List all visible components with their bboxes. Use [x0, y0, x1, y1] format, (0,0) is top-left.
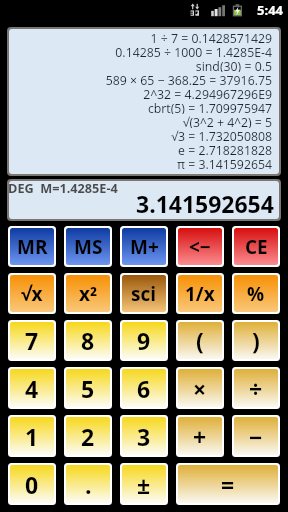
button[interactable]: ±: [122, 465, 166, 503]
staticText: ±: [137, 469, 151, 500]
button[interactable]: 7: [10, 322, 54, 359]
staticText: ÷: [249, 373, 263, 404]
staticText: 5: [81, 373, 95, 404]
staticText: √3 = 1.732050808: [171, 128, 272, 142]
button[interactable]: x²: [66, 275, 110, 312]
button[interactable]: ): [234, 322, 278, 359]
staticText: +: [193, 421, 207, 452]
staticText: sind(30) = 0.5: [195, 58, 272, 72]
button[interactable]: 1: [10, 417, 54, 455]
staticText: 1: [25, 421, 39, 452]
button[interactable]: −: [234, 417, 278, 455]
staticText: .: [85, 469, 92, 500]
button[interactable]: 3: [122, 417, 166, 455]
staticText: 0: [25, 469, 39, 500]
button[interactable]: 4: [10, 369, 54, 407]
button[interactable]: .: [66, 465, 110, 503]
staticText: −: [249, 421, 263, 452]
staticText: cbrt(5) = 1.709975947: [147, 100, 272, 114]
staticText: 3: [137, 421, 151, 452]
staticText: 589 × 65 − 368.25 = 37916.75: [105, 72, 272, 86]
button[interactable]: 9: [122, 322, 166, 359]
staticText: √(3^2 + 4^2) = 5: [182, 114, 272, 128]
staticText: 2^32 = 4.294967296E9: [143, 86, 272, 100]
button[interactable]: MR: [10, 228, 54, 265]
staticText: CE: [245, 234, 268, 260]
button[interactable]: 1/x: [178, 275, 222, 312]
staticText: 3.141592654: [136, 188, 274, 219]
button[interactable]: √x: [10, 275, 54, 312]
staticText: 7: [25, 325, 39, 356]
staticText: √x: [21, 281, 43, 307]
button[interactable]: ×: [178, 369, 222, 407]
staticText: 6: [137, 373, 151, 404]
staticText: 1 ÷ 7 = 0.1428571429: [150, 30, 272, 44]
staticText: 0.14285 ÷ 1000 = 1.4285E-4: [115, 44, 272, 58]
staticText: π = 3.141592654: [177, 156, 272, 170]
button[interactable]: 0: [10, 465, 54, 503]
staticText: e = 2.718281828: [178, 142, 272, 156]
button[interactable]: <−: [178, 228, 222, 265]
staticText: sci: [131, 281, 157, 307]
button[interactable]: 6: [122, 369, 166, 407]
button[interactable]: ÷: [234, 369, 278, 407]
button[interactable]: =: [178, 465, 278, 503]
button[interactable]: CE: [234, 228, 278, 265]
staticText: (: [196, 325, 204, 356]
button[interactable]: (: [178, 322, 222, 359]
staticText: 1/x: [185, 281, 215, 307]
button[interactable]: %: [234, 275, 278, 312]
button[interactable]: sci: [122, 275, 166, 312]
staticText: M+: [130, 234, 159, 260]
staticText: DEG M=1.4285E-4: [9, 181, 118, 196]
staticText: x²: [79, 281, 98, 307]
staticText: MR: [17, 234, 48, 260]
staticText: <−: [189, 234, 211, 260]
staticText: 4: [25, 373, 39, 404]
button[interactable]: M+: [122, 228, 166, 265]
button[interactable]: MS: [66, 228, 110, 265]
staticText: 8: [81, 325, 95, 356]
staticText: ): [252, 325, 260, 356]
staticText: 5:44: [257, 1, 283, 19]
staticText: 2: [81, 421, 95, 452]
button[interactable]: 5: [66, 369, 110, 407]
button[interactable]: 2: [66, 417, 110, 455]
staticText: MS: [74, 234, 103, 260]
staticText: %: [247, 281, 265, 307]
staticText: ×: [193, 373, 207, 404]
button[interactable]: 8: [66, 322, 110, 359]
staticText: 9: [137, 325, 151, 356]
staticText: =: [221, 469, 235, 500]
button[interactable]: +: [178, 417, 222, 455]
